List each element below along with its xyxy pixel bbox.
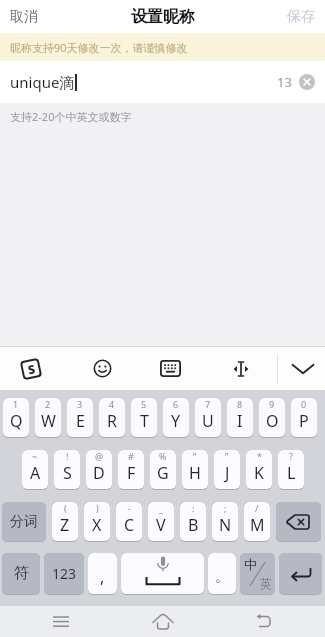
staticText: 3 — [77, 398, 83, 410]
staticText: A — [30, 462, 41, 484]
button[interactable]: ( — [52, 502, 78, 542]
staticText: # — [128, 450, 134, 462]
button[interactable] — [254, 614, 272, 629]
button[interactable] — [152, 613, 174, 630]
button[interactable]: unique滴 — [0, 61, 325, 103]
button[interactable]: 9 — [259, 398, 285, 438]
staticText: / — [255, 502, 259, 514]
button[interactable]: , — [88, 553, 117, 595]
button[interactable] — [232, 360, 250, 378]
staticText: 4 — [109, 398, 115, 410]
staticText: 6 — [173, 398, 179, 410]
staticText: 9 — [269, 398, 275, 410]
button[interactable]: @ — [86, 450, 112, 490]
button[interactable]: 。 — [208, 553, 236, 595]
staticText: D — [93, 462, 105, 484]
staticText: @ — [95, 450, 104, 462]
staticText: unique滴 — [10, 72, 75, 92]
button[interactable]: ; — [212, 502, 238, 542]
staticText: V — [156, 514, 166, 536]
button[interactable] — [121, 553, 204, 595]
staticText: 。 — [215, 568, 229, 586]
button[interactable] — [93, 359, 112, 378]
button[interactable]: 7 — [195, 398, 221, 438]
button[interactable]: S — [19, 357, 43, 381]
button[interactable]: ) — [84, 502, 110, 542]
staticText: * — [257, 450, 262, 462]
button[interactable]: : — [180, 502, 206, 542]
staticText: N — [219, 514, 232, 536]
staticText: K — [254, 462, 264, 484]
staticText: ; — [224, 502, 227, 514]
staticText: C — [124, 514, 135, 536]
staticText: “ — [193, 450, 197, 462]
staticText: S — [26, 360, 37, 377]
staticText: 保存 — [287, 8, 315, 26]
staticText: 英 — [260, 576, 272, 591]
staticText: 1 — [13, 398, 19, 410]
staticText: B — [188, 514, 199, 536]
button[interactable] — [299, 74, 315, 90]
staticText: - — [128, 502, 131, 514]
button[interactable]: ? — [278, 450, 304, 490]
staticText: E — [76, 410, 85, 432]
staticText: 支持2-20个中英文或数字 — [10, 109, 132, 124]
staticText: ~ — [32, 450, 38, 462]
staticText: Z — [60, 514, 70, 536]
staticText: 2 — [45, 398, 51, 410]
button[interactable]: 4 — [99, 398, 125, 438]
button[interactable]: 0 — [291, 398, 317, 438]
staticText: G — [157, 462, 169, 484]
button[interactable]: 3 — [67, 398, 93, 438]
button[interactable]: 符 — [2, 553, 40, 595]
button[interactable]: ” — [214, 450, 240, 490]
button[interactable]: / — [244, 502, 270, 542]
button[interactable] — [279, 553, 322, 595]
button[interactable]: # — [118, 450, 144, 490]
button[interactable]: ~ — [22, 450, 48, 490]
staticText: R — [107, 410, 117, 432]
staticText: 8 — [237, 398, 243, 410]
button[interactable]: “ — [182, 450, 208, 490]
button[interactable]: _ — [148, 502, 174, 542]
button[interactable]: 保存 — [287, 8, 315, 26]
staticText: P — [299, 410, 309, 432]
staticText: 符 — [14, 564, 29, 583]
staticText: 5 — [141, 398, 147, 410]
button[interactable]: 5 — [131, 398, 157, 438]
staticText: O — [266, 410, 279, 432]
button[interactable] — [291, 361, 315, 377]
staticText: _ — [159, 502, 163, 514]
staticText: : — [192, 502, 195, 514]
staticText: S — [63, 462, 72, 484]
staticText: 分词 — [10, 513, 38, 531]
button[interactable]: - — [116, 502, 142, 542]
button[interactable]: * — [246, 450, 272, 490]
button[interactable]: ! — [54, 450, 80, 490]
staticText: X — [92, 514, 102, 536]
staticText: ? — [289, 450, 293, 462]
staticText: 13 — [277, 73, 292, 91]
button[interactable] — [276, 502, 321, 542]
staticText: ! — [66, 450, 69, 462]
staticText: 取消 — [10, 8, 38, 26]
button[interactable]: 中 — [240, 553, 275, 595]
staticText: 123 — [52, 564, 77, 583]
staticText: % — [159, 450, 167, 462]
button[interactable]: 分词 — [2, 502, 46, 542]
button[interactable]: 6 — [163, 398, 189, 438]
button[interactable]: 8 — [227, 398, 253, 438]
button[interactable]: 取消 — [10, 8, 38, 26]
staticText: F — [127, 462, 136, 484]
staticText: Y — [171, 410, 181, 432]
button[interactable]: 1 — [3, 398, 29, 438]
button[interactable]: % — [150, 450, 176, 490]
staticText: 中 — [244, 556, 257, 572]
button[interactable] — [160, 360, 181, 377]
button[interactable]: 123 — [44, 553, 84, 595]
button[interactable]: 2 — [35, 398, 61, 438]
button[interactable] — [53, 616, 70, 628]
staticText: ” — [225, 450, 229, 462]
staticText: Q — [10, 410, 23, 432]
staticText: 昵称支持90天修改一次，请谨慎修改 — [10, 40, 188, 55]
